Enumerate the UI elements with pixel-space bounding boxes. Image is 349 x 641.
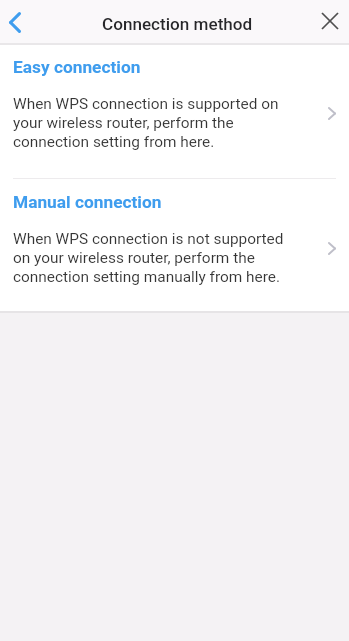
staticText: Easy connection: [13, 57, 141, 77]
button[interactable]: Manual connection: [0, 179, 349, 311]
button[interactable]: Back: [0, 0, 30, 43]
staticText: When WPS connection is supported on your…: [13, 95, 328, 151]
staticText: Connection method: [102, 14, 253, 34]
button[interactable]: Close: [312, 0, 349, 43]
staticText: When WPS connection is not supported on …: [13, 230, 328, 286]
staticText: Manual connection: [13, 192, 162, 212]
button[interactable]: Easy connection: [0, 45, 349, 178]
